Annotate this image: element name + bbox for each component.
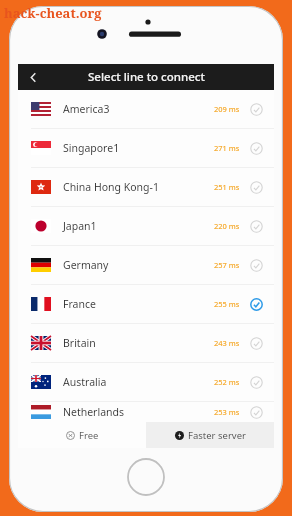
staticText: Netherlands [63, 405, 125, 419]
button[interactable]: Japan1 [18, 207, 274, 245]
staticText: 253 ms [214, 407, 240, 417]
staticText: Singapore1 [63, 141, 120, 155]
staticText: Select line to connect [88, 69, 205, 85]
staticText: Faster server [188, 429, 246, 442]
staticText: Britain [63, 336, 96, 350]
button[interactable]: Back [18, 64, 48, 90]
button[interactable]: Faster server [146, 422, 274, 448]
staticText: 255 ms [214, 299, 240, 309]
staticText: Free [79, 429, 99, 442]
staticText: hack-cheat.org [4, 4, 102, 22]
staticText: China Hong Kong-1 [63, 180, 159, 194]
staticText: 251 ms [214, 182, 240, 192]
button[interactable]: America3 [18, 90, 274, 128]
button[interactable]: Australia [18, 363, 274, 401]
staticText: 209 ms [214, 104, 240, 114]
staticText: Japan1 [63, 219, 97, 233]
button[interactable]: Germany [18, 246, 274, 284]
staticText: 243 ms [214, 338, 240, 348]
staticText: France [63, 297, 96, 311]
button[interactable]: Netherlands [18, 402, 274, 422]
button[interactable]: France [18, 285, 274, 323]
staticText: 257 ms [214, 260, 240, 270]
staticText: America3 [63, 102, 110, 116]
button[interactable]: China Hong Kong-1 [18, 168, 274, 206]
staticText: 271 ms [214, 143, 240, 153]
button[interactable]: Free [18, 422, 146, 448]
staticText: 252 ms [214, 377, 240, 387]
button[interactable]: Britain [18, 324, 274, 362]
staticText: Australia [63, 375, 107, 389]
staticText: 220 ms [214, 221, 240, 231]
button[interactable]: Singapore1 [18, 129, 274, 167]
staticText: Germany [63, 258, 109, 272]
